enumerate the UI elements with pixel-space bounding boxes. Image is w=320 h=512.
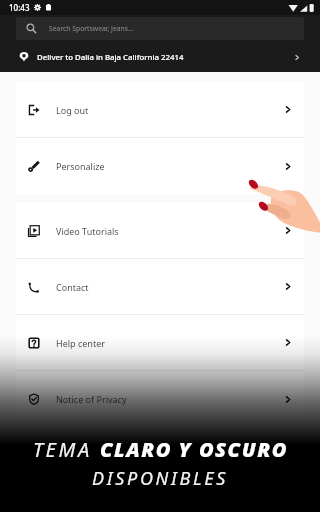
button[interactable]: Video Tutorials xyxy=(16,203,304,258)
staticText: Personalize xyxy=(56,160,105,172)
button[interactable]: Contact xyxy=(16,259,304,314)
button[interactable]: Notice of Privacy xyxy=(16,371,304,427)
staticText: TEMA xyxy=(33,436,100,463)
button[interactable]: Log out xyxy=(16,82,304,137)
staticText: Notice of Privacy xyxy=(56,393,127,405)
button[interactable]: Search Sportswear, Jeans... xyxy=(16,17,304,40)
staticText: 10:43 xyxy=(9,2,30,13)
staticText: CLARO Y OSCURO xyxy=(100,436,288,463)
staticText: Log out xyxy=(56,104,89,116)
staticText: Contact xyxy=(56,281,89,293)
button[interactable]: Help center xyxy=(16,315,304,370)
staticText: DISPONIBLES xyxy=(92,466,229,491)
button[interactable]: Deliver to Dalia in Baja California 2241… xyxy=(0,42,320,72)
staticText: Deliver to Dalia in Baja California 2241… xyxy=(37,52,184,63)
staticText: Video Tutorials xyxy=(56,225,119,237)
staticText: Help center xyxy=(56,337,105,349)
staticText: Search Sportswear, Jeans... xyxy=(49,24,134,33)
button[interactable]: Personalize xyxy=(16,138,304,194)
